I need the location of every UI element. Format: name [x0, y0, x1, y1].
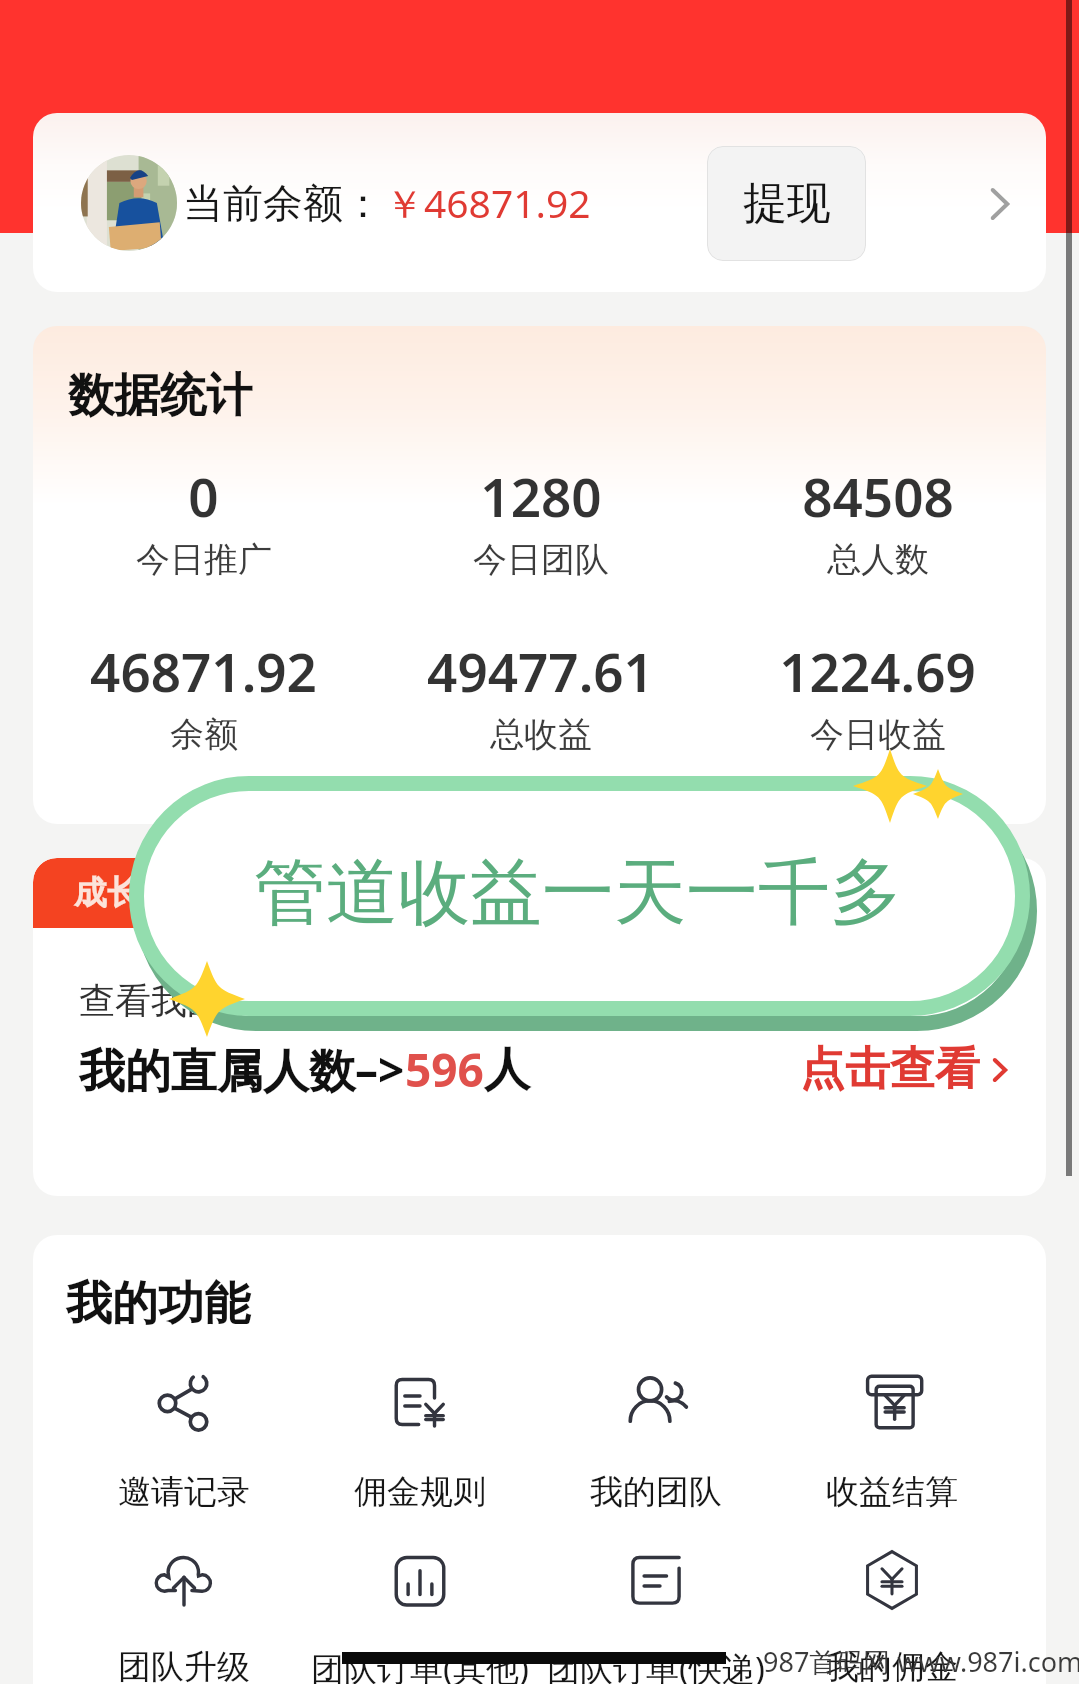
staticText: 今日收益: [810, 713, 946, 756]
other: 查看余额详情: [972, 176, 1028, 232]
staticText: 当前余额：: [183, 178, 383, 228]
button[interactable]: 0: [35, 460, 372, 581]
button[interactable]: 我的佣金: [774, 1547, 1010, 1684]
other: 用户头像: [81, 155, 177, 251]
button[interactable]: 84508: [709, 460, 1046, 581]
staticText: 1280: [480, 460, 602, 532]
staticText: 佣金规则: [354, 1471, 486, 1513]
staticText: 提现: [743, 176, 831, 231]
staticText: 邀请记录: [118, 1471, 250, 1513]
staticText: 46871.92: [90, 635, 317, 707]
staticText: 我的功能: [66, 1275, 250, 1333]
staticText: 管道收益一天一千多: [254, 848, 902, 939]
button[interactable]: 1280: [372, 460, 709, 581]
button[interactable]: 佣金规则: [302, 1369, 538, 1513]
button[interactable]: 收益结算: [774, 1369, 1010, 1513]
button[interactable]: 成长值: [33, 858, 213, 928]
staticText: 人: [484, 1041, 530, 1099]
staticText: 今日推广: [136, 538, 272, 581]
staticText: 596: [405, 1038, 484, 1101]
staticText: 我的佣金: [826, 1646, 958, 1684]
button[interactable]: 团队升级: [66, 1547, 302, 1684]
staticText: 我的团队: [590, 1471, 722, 1513]
button[interactable]: 提现: [707, 146, 866, 261]
staticText: 团队订单(快递): [547, 1646, 765, 1684]
staticText: 987首码网 www.987i.com: [763, 1643, 1079, 1680]
other: 点击查看直属人数: [980, 1050, 1020, 1090]
staticText: 0: [188, 460, 219, 532]
staticText: 我的直属人数–>: [79, 1038, 405, 1101]
button[interactable]: 我的直属人数–>: [79, 1038, 1020, 1101]
staticText: 团队订单(其他): [311, 1646, 529, 1684]
staticText: 收益结算: [826, 1471, 958, 1513]
button[interactable]: 1224.69: [709, 635, 1046, 756]
button[interactable]: 团队订单(其他): [302, 1547, 538, 1684]
staticText: ￥46871.92: [385, 176, 591, 229]
staticText: 成长值: [74, 872, 173, 914]
staticText: 数据统计: [68, 367, 252, 425]
staticText: 总人数: [827, 538, 929, 581]
staticText: 点击查看: [800, 1041, 980, 1098]
button[interactable]: 我的团队: [538, 1369, 774, 1513]
button[interactable]: 49477.61: [372, 635, 709, 756]
staticText: 49477.61: [427, 635, 654, 707]
button[interactable]: 用户头像: [33, 113, 1046, 292]
staticText: 1224.69: [779, 635, 976, 707]
button[interactable]: 46871.92: [35, 635, 372, 756]
staticText: 总收益: [490, 713, 592, 756]
staticText: 查看我的成长值: [79, 978, 331, 1023]
staticText: 余额: [170, 713, 238, 756]
staticText: 84508: [802, 460, 954, 532]
button[interactable]: 团队订单(快递): [538, 1547, 774, 1684]
staticText: 团队升级: [118, 1646, 250, 1684]
staticText: 今日团队: [473, 538, 609, 581]
button[interactable]: 邀请记录: [66, 1369, 302, 1513]
